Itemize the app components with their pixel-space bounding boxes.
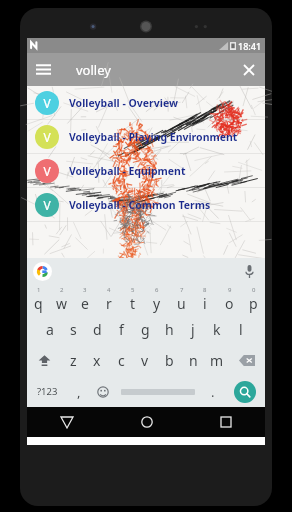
staticText: Volleyball - Common Terms bbox=[69, 198, 211, 212]
staticText: 1 bbox=[37, 286, 41, 294]
button[interactable]: g bbox=[133, 314, 157, 345]
button[interactable]: 3 bbox=[73, 284, 97, 314]
button[interactable]: 9 bbox=[217, 284, 241, 314]
staticText: a bbox=[46, 320, 54, 339]
button[interactable]: Space bbox=[115, 376, 201, 407]
button[interactable]: 7 bbox=[169, 284, 193, 314]
button[interactable]: h bbox=[157, 314, 181, 345]
staticText: 0 bbox=[252, 286, 256, 294]
button[interactable]: 5 bbox=[121, 284, 145, 314]
button[interactable]: Clear search bbox=[232, 53, 265, 86]
button[interactable]: V bbox=[27, 154, 265, 187]
button[interactable]: Search bbox=[234, 381, 256, 403]
staticText: ?123 bbox=[37, 385, 58, 398]
staticText: V bbox=[43, 95, 51, 111]
button[interactable]: j bbox=[181, 314, 205, 345]
button[interactable]: b bbox=[157, 345, 181, 376]
staticText: 18:41 bbox=[238, 40, 262, 52]
staticText: t bbox=[130, 294, 136, 313]
staticText: n bbox=[189, 351, 198, 370]
button[interactable]: Google search bbox=[33, 262, 52, 281]
staticText: w bbox=[56, 294, 68, 313]
staticText: d bbox=[93, 320, 102, 339]
staticText: q bbox=[34, 294, 43, 313]
button[interactable]: 4 bbox=[97, 284, 121, 314]
button[interactable]: , bbox=[67, 376, 91, 407]
button[interactable]: Home bbox=[107, 407, 186, 437]
staticText: 4 bbox=[107, 286, 111, 294]
staticText: e bbox=[81, 294, 89, 313]
button[interactable]: n bbox=[181, 345, 205, 376]
button[interactable]: l bbox=[229, 314, 253, 345]
staticText: p bbox=[249, 294, 258, 313]
button[interactable]: Backspace bbox=[229, 345, 265, 376]
staticText: s bbox=[70, 320, 77, 339]
button[interactable]: ?123 bbox=[27, 376, 67, 407]
staticText: h bbox=[165, 320, 174, 339]
staticText: 5 bbox=[131, 286, 135, 294]
staticText: Volleyball - Overview bbox=[69, 96, 178, 110]
staticText: volley bbox=[76, 61, 232, 79]
button[interactable]: f bbox=[109, 314, 133, 345]
button[interactable]: Emoji bbox=[91, 376, 115, 407]
button[interactable]: x bbox=[85, 345, 109, 376]
staticText: g bbox=[141, 320, 150, 339]
staticText: , bbox=[77, 383, 81, 401]
button[interactable]: . bbox=[201, 376, 225, 407]
button[interactable]: k bbox=[205, 314, 229, 345]
staticText: V bbox=[43, 163, 51, 179]
staticText: 8 bbox=[203, 286, 207, 294]
staticText: c bbox=[118, 351, 125, 370]
staticText: u bbox=[177, 294, 186, 313]
button[interactable]: V bbox=[27, 86, 265, 119]
staticText: Volleyball - Equipment bbox=[69, 164, 186, 178]
button[interactable]: Open navigation menu bbox=[27, 53, 60, 86]
staticText: 2 bbox=[60, 286, 64, 294]
button[interactable]: m bbox=[205, 345, 229, 376]
button[interactable]: z bbox=[62, 345, 85, 376]
staticText: Volleyball - Playing Environment bbox=[69, 130, 238, 144]
button[interactable]: Shift bbox=[27, 345, 62, 376]
staticText: z bbox=[70, 351, 77, 370]
staticText: 7 bbox=[180, 286, 184, 294]
button[interactable]: V bbox=[27, 188, 265, 221]
staticText: x bbox=[93, 351, 101, 370]
staticText: 3 bbox=[83, 286, 87, 294]
staticText: 6 bbox=[155, 286, 159, 294]
staticText: o bbox=[225, 294, 234, 313]
staticText: . bbox=[211, 383, 215, 401]
staticText: k bbox=[213, 320, 221, 339]
button[interactable]: 0 bbox=[241, 284, 265, 314]
button[interactable]: Back bbox=[27, 407, 107, 437]
staticText: 9 bbox=[228, 286, 232, 294]
staticText: V bbox=[43, 197, 51, 213]
staticText: r bbox=[106, 294, 112, 313]
button[interactable]: V bbox=[27, 120, 265, 153]
staticText: v bbox=[141, 351, 149, 370]
staticText: f bbox=[119, 320, 124, 339]
button[interactable]: 8 bbox=[193, 284, 217, 314]
button[interactable]: s bbox=[61, 314, 85, 345]
button[interactable]: Voice input bbox=[239, 261, 259, 281]
staticText: m bbox=[210, 351, 224, 370]
staticText: V bbox=[43, 129, 51, 145]
button[interactable]: 6 bbox=[145, 284, 169, 314]
staticText: j bbox=[191, 320, 195, 339]
button[interactable]: v bbox=[133, 345, 157, 376]
staticText: i bbox=[203, 294, 207, 313]
button[interactable]: c bbox=[109, 345, 133, 376]
staticText: l bbox=[239, 320, 243, 339]
button[interactable]: Recent apps bbox=[186, 407, 265, 437]
staticText: b bbox=[165, 351, 174, 370]
button[interactable]: d bbox=[85, 314, 109, 345]
button[interactable]: a bbox=[38, 314, 61, 345]
staticText: y bbox=[153, 294, 161, 313]
button[interactable]: 2 bbox=[50, 284, 73, 314]
button[interactable]: 1 bbox=[27, 284, 50, 314]
